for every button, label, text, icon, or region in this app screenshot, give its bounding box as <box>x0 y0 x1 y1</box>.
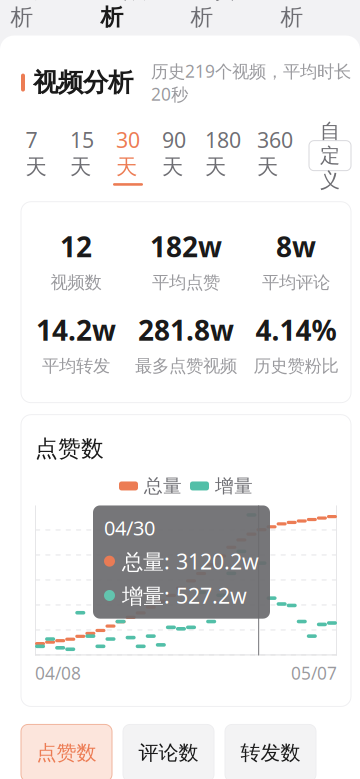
button[interactable]: 180天 <box>205 126 257 186</box>
staticText: 评论数 <box>138 741 198 765</box>
button[interactable]: 30天 <box>113 126 159 186</box>
button[interactable]: 评论数 <box>123 724 214 779</box>
staticText: 平均评论 <box>262 272 330 293</box>
staticText: 04/30 <box>104 514 155 541</box>
staticText: 平均点赞 <box>152 272 220 293</box>
staticText: 总量 <box>144 474 182 497</box>
button[interactable]: 粉丝分析 <box>270 0 360 35</box>
staticText: 15天 <box>70 126 94 180</box>
staticText: 04/08 <box>35 661 81 684</box>
staticText: 12 <box>60 228 92 265</box>
staticText: 30天 <box>116 126 140 180</box>
staticText: 281.8w <box>138 311 234 348</box>
staticText: 7天 <box>25 126 46 180</box>
staticText: 8w <box>276 228 316 265</box>
staticText: 转发数 <box>240 741 300 765</box>
staticText: 历史赞粉比 <box>253 355 338 377</box>
staticText: 182w <box>150 228 222 265</box>
staticText: 最多点赞视频 <box>135 355 237 377</box>
staticText: 点赞数 <box>36 741 96 765</box>
staticText: 视频分析 <box>33 67 133 98</box>
staticText: 视频分析 <box>100 0 169 31</box>
staticText: 180天 <box>205 126 241 180</box>
staticText: 增量 <box>215 474 253 497</box>
staticText: 总量: 3120.2w <box>122 547 259 575</box>
staticText: 带货分析 <box>190 0 259 31</box>
button[interactable]: 点赞数 <box>21 724 112 779</box>
staticText: 360天 <box>257 126 293 180</box>
button[interactable]: 转发数 <box>225 724 316 779</box>
staticText: 粉丝分析 <box>280 0 349 31</box>
staticText: 历史219个视频，平均时长20秒 <box>151 59 351 105</box>
button[interactable]: 15天 <box>67 126 113 186</box>
button[interactable]: 直播分析 <box>0 0 90 35</box>
staticText: 14.2w <box>36 311 116 348</box>
staticText: 直播分析 <box>10 0 79 31</box>
staticText: 点赞数 <box>35 435 104 462</box>
staticText: 4.14% <box>255 311 336 348</box>
staticText: 05/07 <box>291 661 337 684</box>
button[interactable]: 自定义 <box>309 141 351 171</box>
staticText: 90天 <box>162 126 186 180</box>
staticText: 增量: 527.2w <box>122 581 247 610</box>
button[interactable]: 视频分析 <box>90 0 180 35</box>
button[interactable]: 7天 <box>21 126 67 186</box>
staticText: 自定义 <box>320 119 340 192</box>
button[interactable]: 90天 <box>159 126 205 186</box>
staticText: 视频数 <box>50 272 101 293</box>
staticText: 平均转发 <box>42 355 110 377</box>
button[interactable]: 带货分析 <box>180 0 270 35</box>
button[interactable]: 360天 <box>257 126 293 186</box>
